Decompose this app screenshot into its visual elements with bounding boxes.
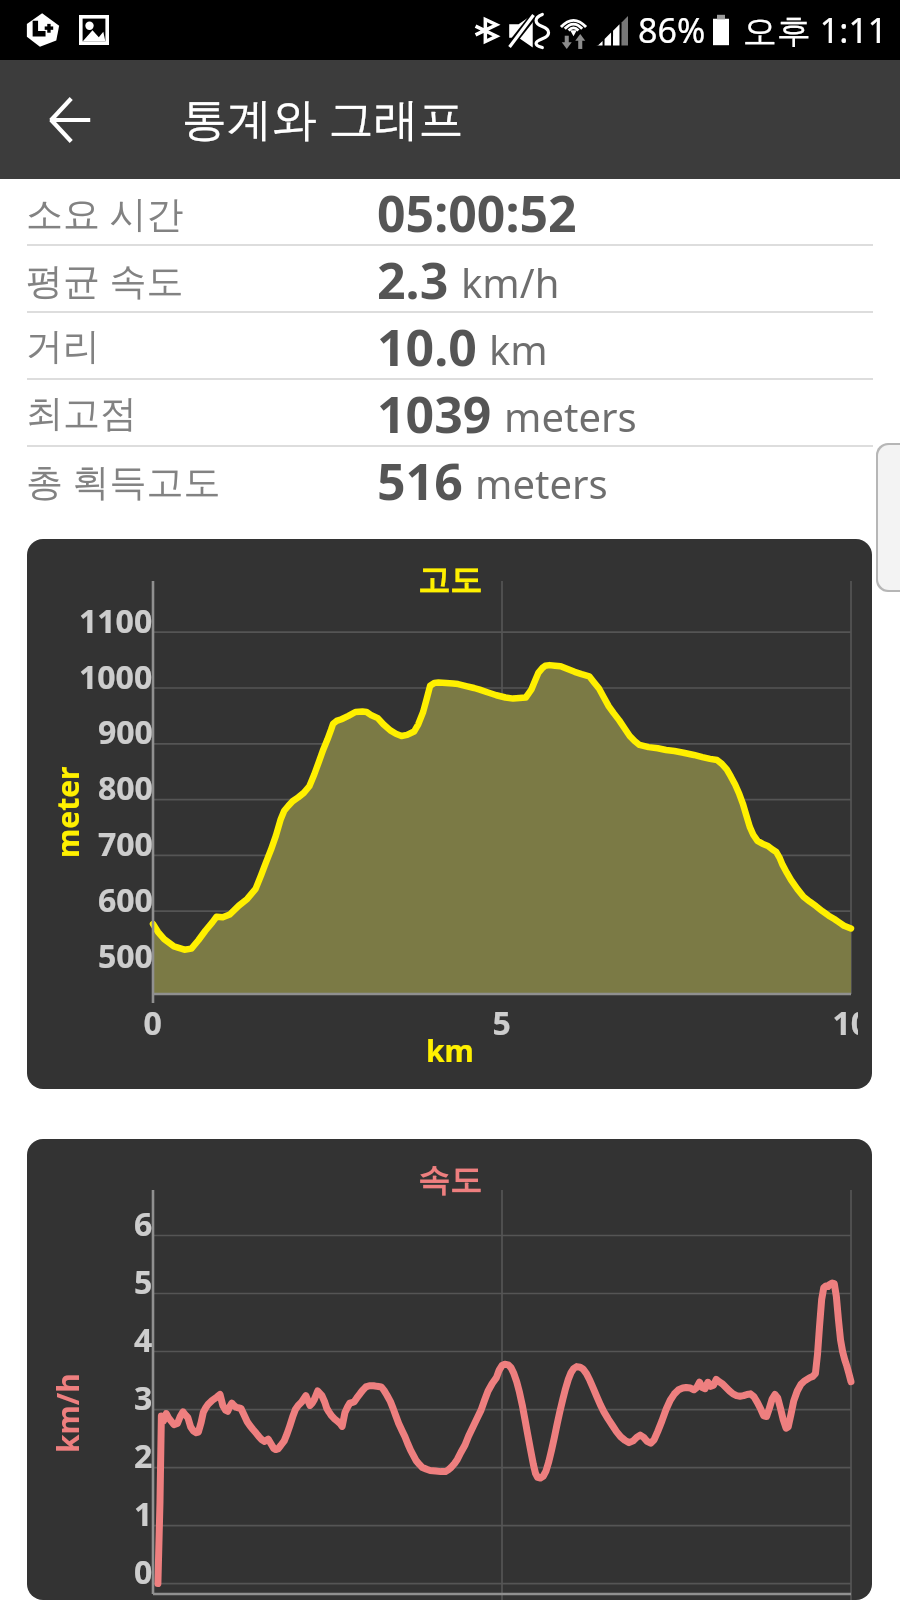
staticText: km/h: [461, 255, 560, 309]
button[interactable]: 평균 속도: [0, 246, 900, 313]
staticText: meters: [475, 456, 608, 510]
staticText: 고도: [418, 560, 482, 600]
staticText: 10.0: [377, 313, 477, 380]
staticText: km: [489, 322, 548, 376]
staticText: 소요 시간: [26, 187, 184, 238]
staticText: 516: [377, 447, 463, 514]
button[interactable]: Elevation chart: [27, 539, 872, 1089]
staticText: 거리: [26, 323, 100, 370]
staticText: 05:00:52: [377, 179, 577, 246]
staticText: 총 획득고도: [26, 455, 221, 506]
button[interactable]: 최고점: [0, 380, 900, 447]
staticText: 1039: [377, 380, 492, 447]
staticText: 2.3: [377, 246, 449, 313]
button[interactable]: 거리: [0, 313, 900, 380]
staticText: 최고점: [26, 390, 137, 437]
staticText: meters: [504, 389, 637, 443]
staticText: 통계와 그래프: [182, 87, 464, 148]
button[interactable]: 소요 시간: [0, 179, 900, 246]
staticText: km: [426, 1030, 474, 1071]
staticText: 평균 속도: [26, 254, 184, 305]
staticText: 오후 1:11: [743, 7, 888, 53]
button[interactable]: Back: [30, 80, 110, 160]
button[interactable]: Speed chart: [27, 1139, 872, 1600]
staticText: 속도: [418, 1160, 482, 1200]
button[interactable]: 총 획득고도: [0, 447, 900, 514]
staticText: 86%: [638, 7, 706, 53]
